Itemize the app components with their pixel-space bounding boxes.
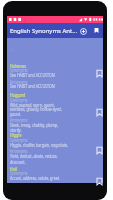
- staticText: Haleness: [10, 63, 26, 69]
- staticText: discount.: [10, 159, 26, 165]
- staticText: Synonyms:: [10, 170, 29, 176]
- staticText: Sleek, smug, chubby, plump,: [10, 122, 58, 128]
- staticText: Accost, address, salute, greet.: [10, 175, 61, 181]
- button[interactable]: Bookmark entry 3: [93, 144, 105, 156]
- staticText: sturdy.: [10, 127, 22, 133]
- staticText: Hail: [10, 166, 18, 172]
- button[interactable]: Bookmark entry 2: [93, 106, 105, 118]
- staticText: Antonyms:: [10, 117, 29, 123]
- staticText: Wild, wasted, worn, gaunt,: [10, 102, 55, 108]
- staticText: English Synonyms Ant...: [10, 27, 77, 35]
- staticText: Haggard: [10, 92, 26, 98]
- button[interactable]: Search: [77, 25, 89, 37]
- button[interactable]: Bookmarks: [91, 25, 102, 36]
- button[interactable]: Bookmark entry 1: [93, 67, 105, 79]
- staticText: Synonyms:: [10, 97, 29, 103]
- staticText: Yield, deduct, abate, reduce,: [10, 153, 58, 159]
- staticText: Antonyms:: [10, 79, 29, 85]
- staticText: See HABIT and ACCUSTOM: [10, 83, 55, 89]
- staticText: Antonyms:: [10, 148, 29, 154]
- staticText: See HABIT and ACCUSTOM: [10, 72, 55, 78]
- staticText: Synonyms:: [10, 67, 29, 73]
- staticText: Higgle: [10, 132, 22, 138]
- button[interactable]: Bookmark entry 4: [93, 175, 105, 187]
- staticText: Synonyms:: [10, 137, 29, 143]
- staticText: wrinkled, ghastly, hollow-eyed,: [10, 106, 62, 112]
- staticText: Higgle, chaffer, bargain, negotiate,: [10, 142, 68, 148]
- staticText: gaunt.: [10, 111, 21, 117]
